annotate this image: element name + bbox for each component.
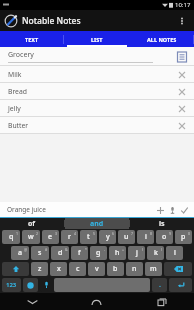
- staticText: is: [159, 219, 165, 229]
- staticText: and: [90, 219, 104, 229]
- staticText: 1: [16, 231, 19, 236]
- staticText: i: [145, 232, 147, 242]
- button[interactable]: Backspace: [164, 262, 192, 276]
- staticText: f: [78, 248, 81, 258]
- staticText: n: [132, 264, 137, 274]
- button[interactable]: Grocery: [0, 47, 194, 66]
- staticText: o: [162, 232, 167, 242]
- button[interactable]: Confirm: [178, 204, 190, 216]
- button[interactable]: e: [42, 230, 59, 244]
- button[interactable]: LIST: [64, 31, 129, 47]
- staticText: b: [113, 264, 118, 274]
- button[interactable]: r: [61, 230, 78, 244]
- button[interactable]: j: [128, 246, 145, 260]
- button[interactable]: h: [109, 246, 126, 260]
- button[interactable]: n: [126, 262, 143, 276]
- button[interactable]: m: [145, 262, 162, 276]
- button[interactable]: Milk: [0, 66, 194, 83]
- staticText: ALL NOTES: [147, 36, 177, 43]
- button[interactable]: Butter: [0, 117, 194, 134]
- staticText: Butter: [8, 121, 29, 130]
- staticText: +: [122, 247, 125, 252]
- button[interactable]: Delete Milk: [175, 68, 189, 82]
- staticText: LIST: [91, 36, 103, 43]
- staticText: -: [104, 247, 106, 252]
- staticText: Jelly: [8, 104, 21, 113]
- button[interactable]: o: [156, 230, 173, 244]
- staticText: m: [150, 264, 157, 274]
- button[interactable]: u: [118, 230, 135, 244]
- staticText: g: [96, 248, 101, 258]
- button[interactable]: Delete Jelly: [175, 102, 189, 116]
- staticText: l: [174, 248, 176, 258]
- button[interactable]: More options: [174, 13, 190, 29]
- staticText: Milk: [8, 70, 22, 79]
- button[interactable]: f: [71, 246, 88, 260]
- button[interactable]: v: [88, 262, 105, 276]
- button[interactable]: a: [11, 246, 29, 260]
- button[interactable]: z: [31, 262, 48, 276]
- button[interactable]: s: [31, 246, 49, 260]
- button[interactable]: Home: [64, 293, 129, 310]
- staticText: of: [28, 219, 36, 229]
- staticText: 10:17: [175, 1, 191, 9]
- button[interactable]: Delete Bread: [175, 85, 189, 99]
- staticText: s: [38, 248, 42, 258]
- button[interactable]: Back: [0, 293, 64, 310]
- button[interactable]: d: [51, 246, 69, 260]
- staticText: r: [68, 232, 71, 242]
- button[interactable]: of: [0, 218, 64, 229]
- staticText: 9: [169, 231, 172, 236]
- button[interactable]: y: [99, 230, 116, 244]
- button[interactable]: Voice input: [166, 204, 178, 216]
- staticText: (: [142, 247, 144, 252]
- button[interactable]: is: [130, 218, 194, 229]
- button[interactable]: x: [50, 262, 67, 276]
- staticText: 123: [6, 281, 17, 289]
- button[interactable]: Enter: [169, 278, 192, 292]
- button[interactable]: TEXT: [0, 31, 64, 47]
- button[interactable]: k: [147, 246, 164, 260]
- staticText: u: [124, 232, 129, 242]
- staticText: *: [85, 247, 87, 252]
- staticText: Grocery: [8, 50, 34, 60]
- button[interactable]: b: [107, 262, 124, 276]
- staticText: Notable Notes: [22, 15, 174, 27]
- button[interactable]: q: [2, 230, 20, 244]
- staticText: .: [159, 280, 161, 290]
- button[interactable]: i: [137, 230, 154, 244]
- button[interactable]: 123: [2, 278, 21, 292]
- button[interactable]: p: [175, 230, 192, 244]
- button[interactable]: g: [90, 246, 107, 260]
- button[interactable]: .: [152, 278, 167, 292]
- button[interactable]: ALL NOTES: [129, 31, 194, 47]
- button[interactable]: Add: [154, 204, 166, 216]
- staticText: 0: [188, 231, 191, 236]
- staticText: w: [28, 232, 34, 242]
- staticText: 4: [74, 231, 77, 236]
- staticText: @: [24, 247, 28, 252]
- button[interactable]: t: [80, 230, 97, 244]
- staticText: ): [161, 247, 163, 252]
- button[interactable]: Emoji: [23, 278, 38, 292]
- button[interactable]: Orange juice: [0, 202, 194, 217]
- staticText: Bread: [8, 87, 27, 96]
- button[interactable]: Bread: [0, 83, 194, 100]
- staticText: c: [76, 264, 80, 274]
- button[interactable]: Delete Butter: [175, 119, 189, 133]
- button[interactable]: Recent apps: [129, 293, 194, 310]
- button[interactable]: Jelly: [0, 100, 194, 117]
- staticText: 7: [131, 231, 134, 236]
- staticText: TEXT: [25, 36, 39, 43]
- staticText: x: [57, 264, 61, 274]
- button[interactable]: Voice: [40, 278, 52, 292]
- staticText: j: [136, 248, 138, 258]
- button[interactable]: c: [69, 262, 86, 276]
- button[interactable]: Shift: [2, 262, 29, 276]
- button[interactable]: Space: [54, 278, 150, 292]
- button[interactable]: Note list: [175, 50, 189, 64]
- staticText: z: [38, 264, 42, 274]
- button[interactable]: l: [166, 246, 183, 260]
- button[interactable]: w: [22, 230, 40, 244]
- button[interactable]: and: [65, 218, 129, 229]
